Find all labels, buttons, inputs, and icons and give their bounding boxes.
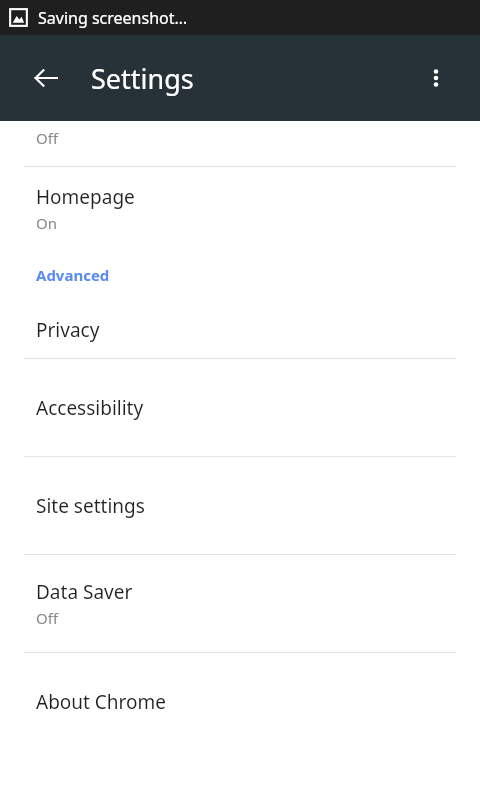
- staticText: Accessibility: [36, 395, 144, 421]
- staticText: On: [36, 213, 57, 233]
- button[interactable]: Off: [0, 121, 480, 166]
- staticText: Homepage: [36, 184, 135, 210]
- button[interactable]: About Chrome: [0, 653, 480, 750]
- button[interactable]: Navigate up: [22, 54, 70, 102]
- button[interactable]: Site settings: [0, 457, 480, 554]
- staticText: Advanced: [36, 265, 110, 285]
- staticText: Settings: [91, 60, 194, 97]
- button[interactable]: Privacy: [0, 301, 480, 358]
- button[interactable]: Accessibility: [0, 359, 480, 456]
- staticText: About Chrome: [36, 689, 167, 715]
- staticText: Off: [36, 608, 59, 628]
- staticText: Privacy: [36, 317, 100, 343]
- staticText: Off: [36, 128, 59, 148]
- button[interactable]: Data Saver: [0, 555, 480, 652]
- button[interactable]: Homepage: [0, 167, 480, 249]
- staticText: Saving screenshot…: [38, 7, 188, 29]
- button[interactable]: More options: [412, 54, 460, 102]
- staticText: Site settings: [36, 493, 145, 519]
- staticText: Data Saver: [36, 579, 133, 605]
